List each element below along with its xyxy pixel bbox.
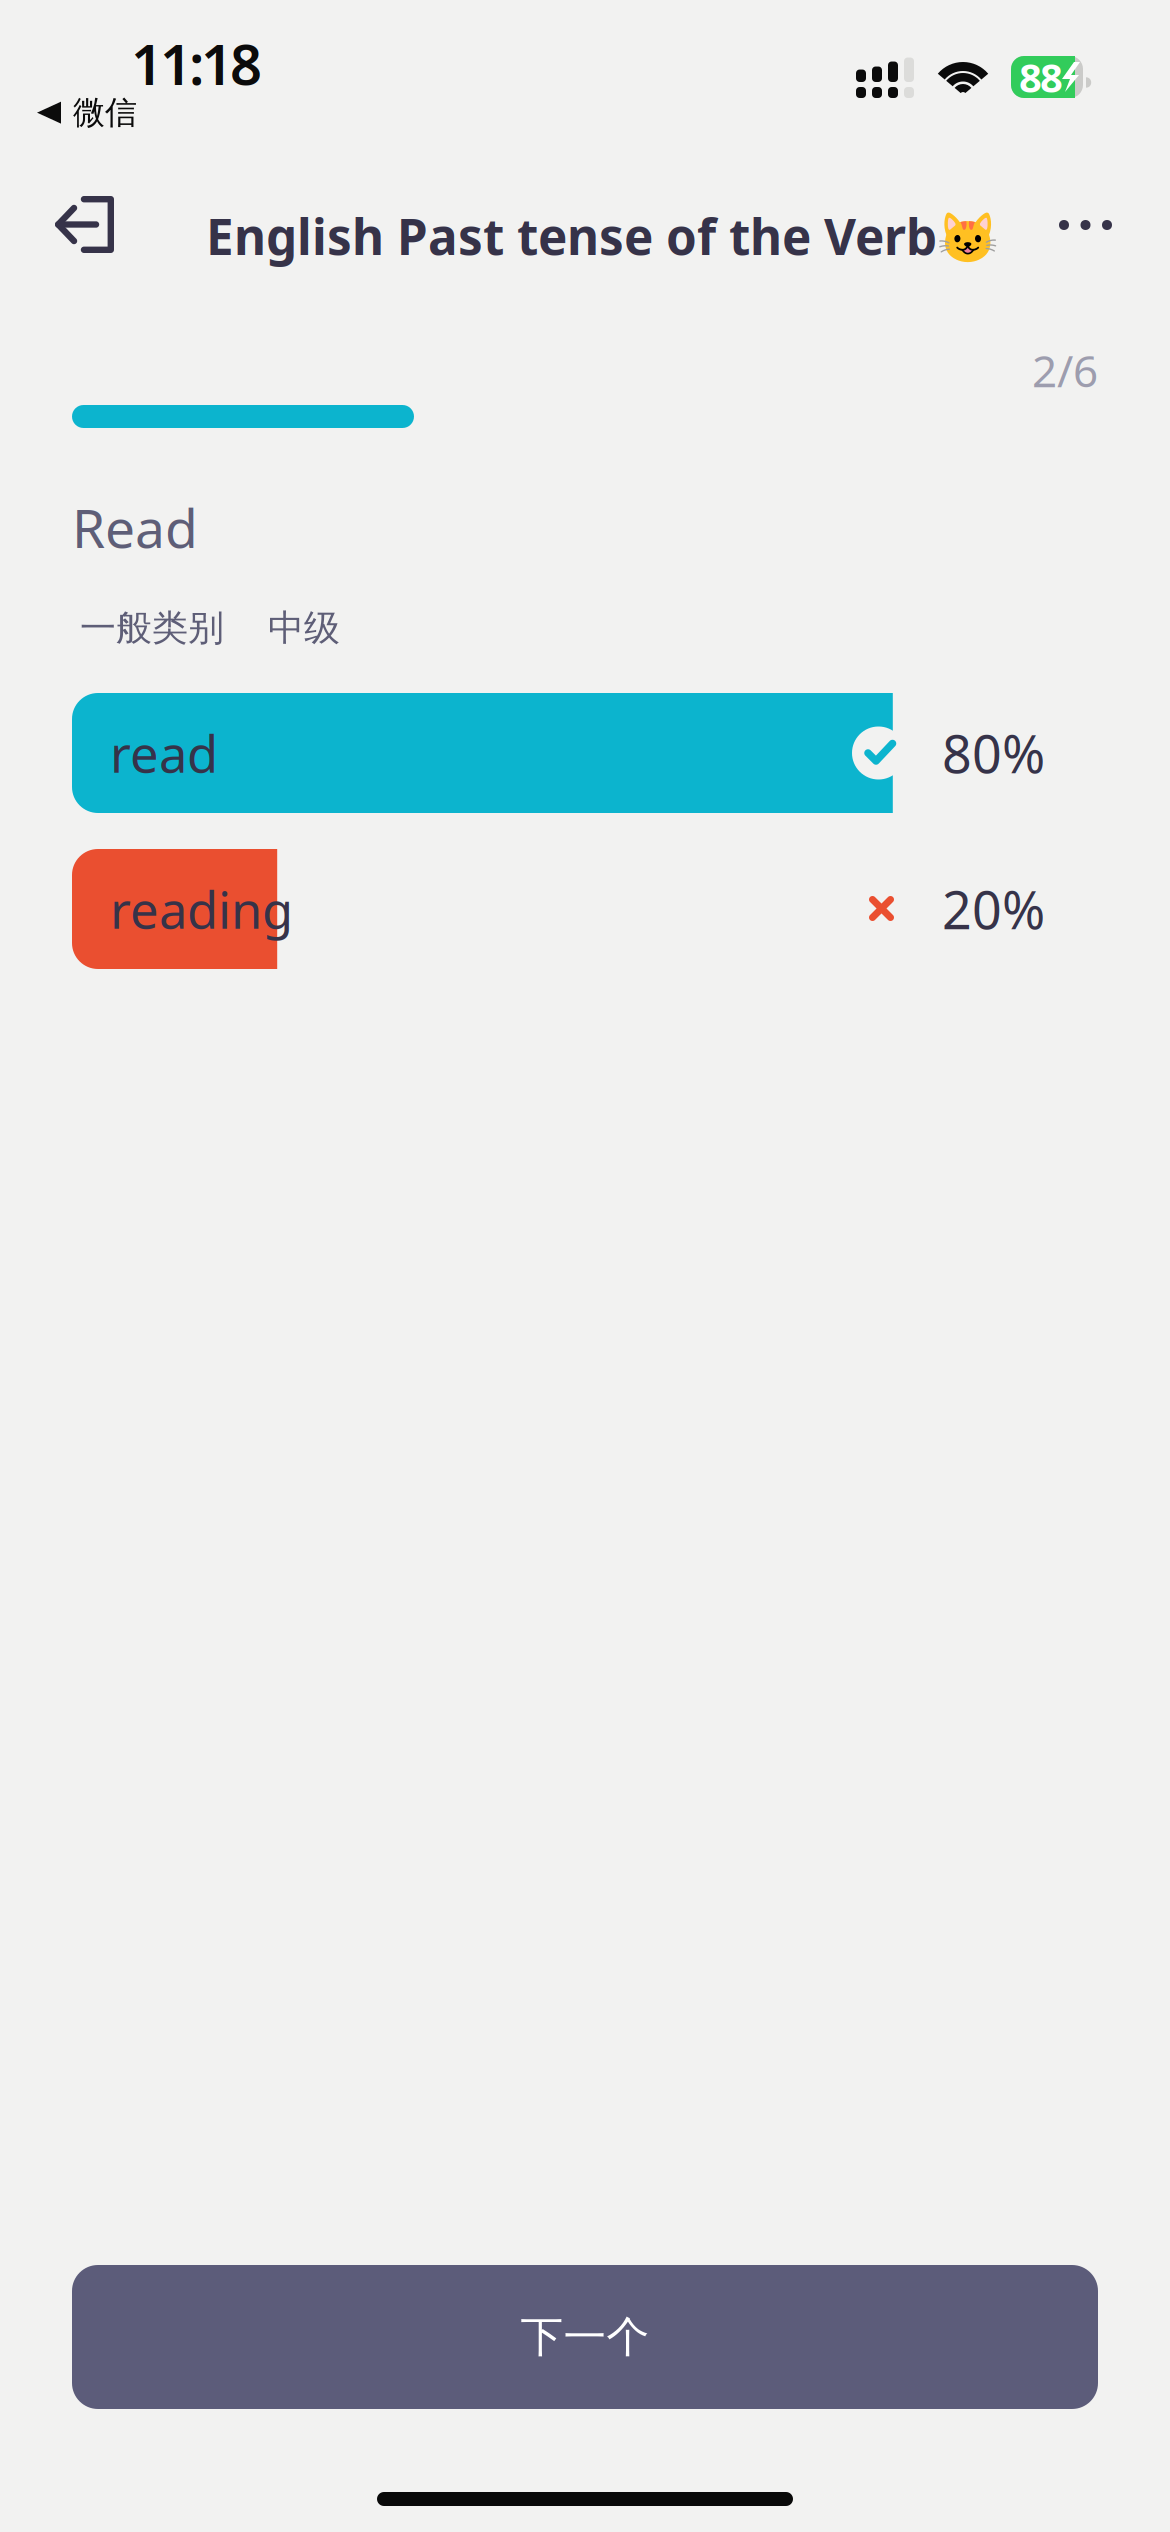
staticText: 20% bbox=[942, 874, 1045, 944]
button[interactable]: 下一个 bbox=[72, 2265, 1098, 2409]
button[interactable]: More options bbox=[1033, 175, 1138, 275]
button[interactable]: reading bbox=[72, 849, 1098, 969]
staticText: 下一个 bbox=[520, 2311, 649, 2363]
staticText: English Past tense of the Verb😺 bbox=[206, 203, 998, 268]
staticText: 80% bbox=[942, 718, 1045, 788]
staticText: 88 bbox=[1019, 50, 1063, 103]
button[interactable]: read bbox=[72, 693, 1098, 813]
staticText: 2/6 bbox=[1032, 341, 1098, 399]
staticText: 微信 bbox=[73, 93, 137, 132]
staticText: 11:18 bbox=[131, 26, 262, 100]
button[interactable]: Back to WeChat bbox=[0, 83, 161, 142]
button[interactable]: Close lesson bbox=[26, 174, 142, 275]
staticText: reading bbox=[110, 875, 293, 943]
staticText: read bbox=[110, 719, 218, 787]
staticText: Read bbox=[72, 492, 198, 563]
staticText: 一般类别 中级 bbox=[80, 606, 340, 650]
